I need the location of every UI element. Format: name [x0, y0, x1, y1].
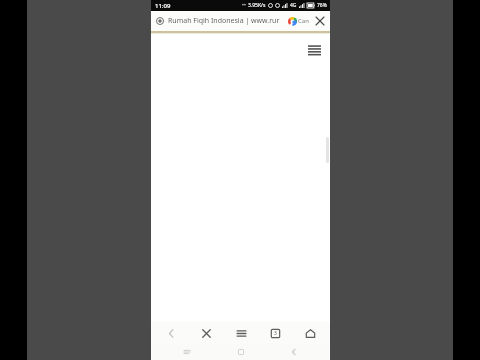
button[interactable]: Recent apps — [169, 344, 205, 360]
button[interactable]: Back — [156, 322, 186, 344]
button[interactable]: Tabs, 3 open — [260, 322, 290, 344]
button[interactable]: Home — [223, 344, 259, 360]
staticText: 3.95K/s — [248, 2, 266, 9]
staticText: Can — [298, 17, 309, 25]
staticText: 11:09 — [155, 2, 171, 10]
staticText: •• — [242, 2, 246, 9]
button[interactable]: Site menu — [305, 41, 323, 59]
staticText: 76% — [317, 2, 327, 9]
button[interactable]: Home — [295, 322, 325, 344]
button[interactable]: Site information — [154, 15, 166, 27]
staticText: Rumah Fiqih Indonesia | www.rur — [168, 16, 284, 26]
button[interactable]: Close — [313, 14, 327, 28]
button[interactable]: Search with Google — [286, 15, 298, 27]
button[interactable]: Stop loading — [191, 322, 221, 344]
staticText: 4G — [290, 2, 297, 9]
button[interactable]: Back — [276, 344, 312, 360]
staticText: 3 — [274, 330, 277, 337]
button[interactable]: Menu — [226, 322, 256, 344]
